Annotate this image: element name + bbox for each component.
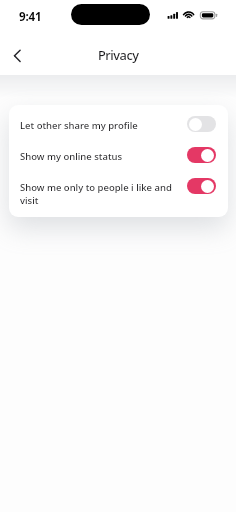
- button[interactable]: Show me only to people i like and visit: [20, 178, 216, 207]
- button[interactable]: Toggle off: [187, 116, 216, 132]
- staticText: 9:41: [19, 9, 42, 25]
- button[interactable]: Show my online status: [20, 147, 216, 163]
- staticText: Show my online status: [20, 150, 179, 163]
- button[interactable]: Back: [4, 45, 30, 71]
- staticText: Privacy: [98, 46, 139, 63]
- staticText: Show me only to people i like and visit: [20, 181, 179, 207]
- button[interactable]: Toggle on: [187, 178, 216, 194]
- button[interactable]: Let other share my profile: [20, 116, 216, 132]
- button[interactable]: Toggle on: [187, 147, 216, 163]
- staticText: Let other share my profile: [20, 119, 179, 132]
